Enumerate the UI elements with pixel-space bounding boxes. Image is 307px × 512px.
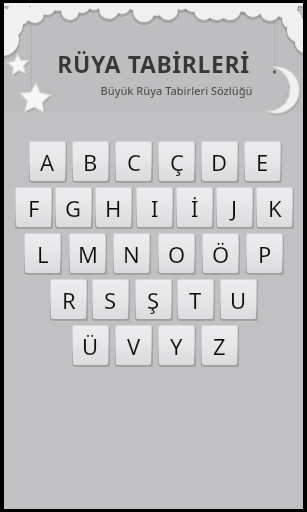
button[interactable]: Ö (202, 233, 239, 274)
button[interactable]: I (136, 187, 173, 228)
button[interactable]: T (177, 279, 214, 320)
staticText: O (168, 239, 186, 269)
staticText: Büyük Rüya Tabirleri Sözlüğü (27, 83, 303, 98)
button[interactable]: İ (176, 187, 213, 228)
staticText: T (189, 285, 202, 315)
button[interactable]: Y (158, 325, 195, 366)
button[interactable]: M (69, 233, 106, 274)
staticText: Ç (170, 147, 184, 177)
button[interactable]: S (92, 279, 129, 320)
staticText: D (211, 147, 228, 177)
staticText: L (37, 239, 49, 269)
staticText: H (105, 193, 122, 223)
button[interactable]: N (113, 233, 150, 274)
staticText: C (127, 147, 141, 177)
staticText: A (40, 147, 55, 177)
staticText: Ö (212, 239, 230, 269)
button[interactable]: F (15, 187, 52, 228)
staticText: B (83, 147, 98, 177)
staticText: RÜYA TABİRLERİ (4, 48, 303, 79)
staticText: N (123, 239, 140, 269)
button[interactable]: Z (201, 325, 238, 366)
staticText: I (151, 193, 159, 223)
staticText: R (62, 285, 76, 315)
staticText: F (28, 193, 40, 223)
button[interactable]: B (72, 141, 109, 182)
staticText: V (127, 331, 141, 361)
button[interactable]: C (115, 141, 152, 182)
staticText: M (78, 239, 98, 269)
button[interactable]: V (115, 325, 152, 366)
staticText: Z (213, 331, 226, 361)
staticText: Ş (147, 285, 160, 315)
button[interactable]: U (220, 279, 257, 320)
button[interactable]: P (246, 233, 283, 274)
button[interactable]: O (158, 233, 195, 274)
button[interactable]: A (29, 141, 66, 182)
button[interactable]: R (50, 279, 87, 320)
staticText: Ü (82, 331, 99, 361)
staticText: U (230, 285, 247, 315)
staticText: K (268, 193, 282, 223)
button[interactable]: G (55, 187, 92, 228)
staticText: İ (191, 193, 199, 223)
button[interactable]: L (24, 233, 61, 274)
staticText: S (104, 285, 117, 315)
staticText: G (65, 193, 82, 223)
button[interactable]: K (256, 187, 293, 228)
button[interactable]: J (216, 187, 253, 228)
staticText: Y (170, 331, 183, 361)
button[interactable]: H (95, 187, 132, 228)
staticText: P (258, 239, 272, 269)
button[interactable]: Ş (135, 279, 172, 320)
staticText: J (231, 193, 238, 223)
button[interactable]: Ç (158, 141, 195, 182)
button[interactable]: E (244, 141, 281, 182)
button[interactable]: Ü (72, 325, 109, 366)
staticText: E (256, 147, 269, 177)
button[interactable]: D (201, 141, 238, 182)
